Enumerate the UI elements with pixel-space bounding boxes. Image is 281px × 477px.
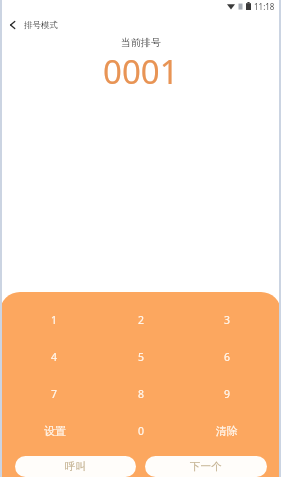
- button[interactable]: 下一个: [145, 456, 267, 477]
- staticText: 5: [138, 350, 145, 364]
- button[interactable]: 7: [11, 375, 98, 412]
- staticText: 排号模式: [24, 20, 58, 31]
- staticText: 呼叫: [65, 460, 86, 473]
- staticText: 当前排号: [121, 36, 161, 49]
- staticText: 2: [138, 313, 145, 327]
- staticText: 11:18: [254, 1, 275, 12]
- button[interactable]: 0: [98, 412, 184, 449]
- staticText: 7: [51, 387, 58, 401]
- staticText: 0: [138, 424, 145, 438]
- button[interactable]: 呼叫: [15, 456, 136, 477]
- button[interactable]: 设置: [11, 412, 98, 449]
- staticText: 设置: [44, 424, 66, 438]
- staticText: 1: [51, 313, 58, 327]
- button[interactable]: 1: [11, 301, 98, 338]
- button[interactable]: 9: [184, 375, 270, 412]
- button[interactable]: 5: [98, 338, 184, 375]
- staticText: 3: [224, 313, 231, 327]
- button[interactable]: Back: [0, 13, 24, 37]
- staticText: 8: [138, 387, 145, 401]
- staticText: 6: [224, 350, 231, 364]
- button[interactable]: 8: [98, 375, 184, 412]
- staticText: 9: [224, 387, 231, 401]
- staticText: 0001: [103, 49, 179, 94]
- button[interactable]: 4: [11, 338, 98, 375]
- button[interactable]: 清除: [184, 412, 270, 449]
- button[interactable]: 6: [184, 338, 270, 375]
- staticText: 下一个: [190, 460, 222, 473]
- button[interactable]: 3: [184, 301, 270, 338]
- button[interactable]: 2: [98, 301, 184, 338]
- staticText: 清除: [216, 424, 238, 438]
- staticText: 4: [51, 350, 58, 364]
